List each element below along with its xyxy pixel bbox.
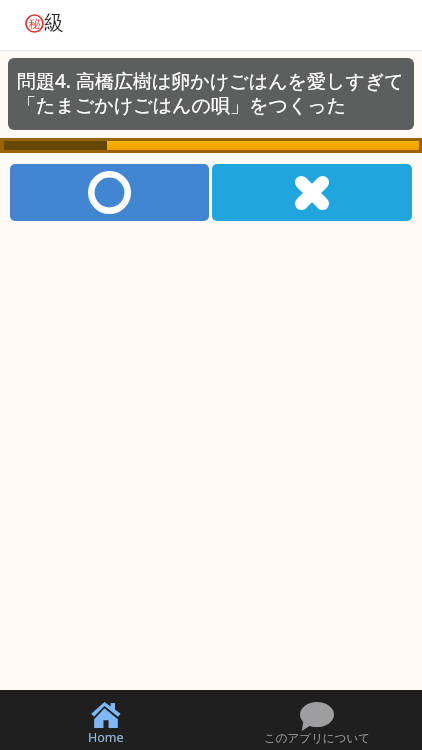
staticText: このアプリについて [264, 731, 370, 745]
button[interactable]: Home [0, 690, 211, 750]
staticText: 級 [44, 11, 64, 36]
button[interactable]: Batsu [212, 164, 412, 221]
staticText: 問題4. 高橋広樹は卵かけごはんを愛しすぎて 「たまごかけごはんの唄」をつくった [17, 68, 404, 118]
staticText: Home [88, 729, 124, 746]
button[interactable]: このアプリについて [211, 690, 422, 750]
button[interactable]: Maru [10, 164, 209, 221]
staticText: 秘 [29, 16, 41, 31]
